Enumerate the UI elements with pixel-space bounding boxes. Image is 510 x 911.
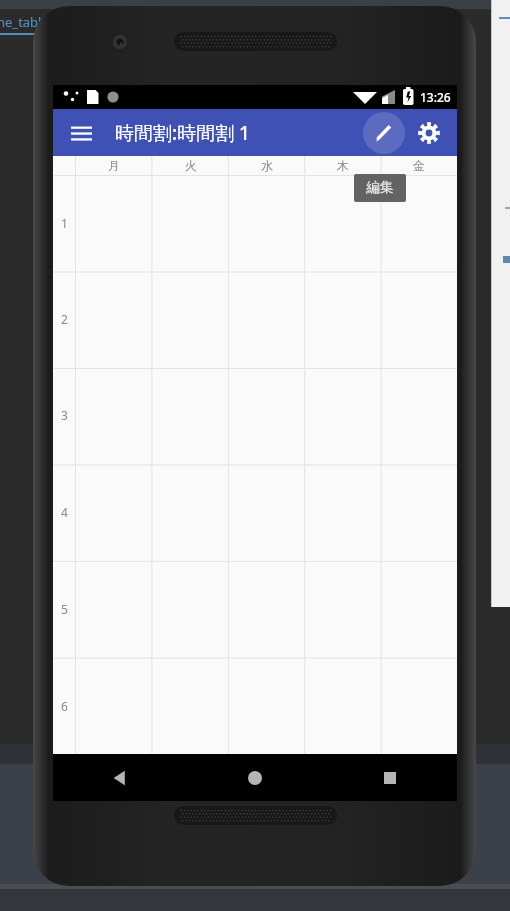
button[interactable]: 水1 xyxy=(229,175,305,271)
button[interactable]: 水3 xyxy=(229,367,305,463)
button[interactable]: 月2 xyxy=(75,271,152,367)
button[interactable]: Home xyxy=(187,754,322,801)
button[interactable]: 編集 xyxy=(363,112,405,154)
button[interactable]: 火3 xyxy=(152,367,229,463)
button[interactable]: Recents xyxy=(322,754,457,801)
staticText: 時間割:時間割 1 xyxy=(115,120,250,146)
staticText: ne_tabl xyxy=(0,13,42,31)
button[interactable]: Settings xyxy=(409,113,449,153)
button[interactable]: 火1 xyxy=(152,175,229,271)
button[interactable]: 月1 xyxy=(75,175,152,271)
button[interactable]: Menu xyxy=(61,113,101,153)
staticText: 月 xyxy=(108,158,120,173)
staticText: 金 xyxy=(413,158,425,173)
staticText: 1 xyxy=(61,215,68,231)
staticText: 木 xyxy=(337,158,349,173)
button[interactable]: 火5 xyxy=(152,560,229,657)
staticText: 水 xyxy=(261,158,273,173)
staticText: 編集 xyxy=(366,179,394,197)
button[interactable]: 月6 xyxy=(75,657,152,754)
staticText: 13:26 xyxy=(420,89,451,105)
staticText: 4 xyxy=(61,504,68,520)
button[interactable]: 月3 xyxy=(75,367,152,463)
button[interactable]: 木1 xyxy=(305,175,381,271)
staticText: 5 xyxy=(61,601,68,617)
staticText: 3 xyxy=(61,407,68,423)
staticText: 6 xyxy=(61,698,68,714)
button[interactable]: 月4 xyxy=(75,463,152,560)
button[interactable]: 金1 xyxy=(381,175,457,271)
button[interactable]: Back xyxy=(53,754,187,801)
button[interactable]: 水5 xyxy=(229,560,305,657)
staticText: 火 xyxy=(185,158,197,173)
staticText: 2 xyxy=(61,311,68,327)
button[interactable]: 月5 xyxy=(75,560,152,657)
